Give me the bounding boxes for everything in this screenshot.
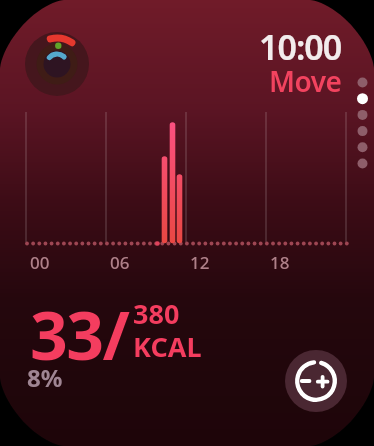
staticText: 10:00 <box>259 24 342 64</box>
staticText: 380 <box>133 295 180 332</box>
staticText: KCAL <box>133 328 202 365</box>
staticText: Move <box>269 62 342 96</box>
staticText: 33/ <box>30 289 129 379</box>
button[interactable] <box>285 350 347 412</box>
button[interactable] <box>25 32 89 96</box>
staticText: 06 <box>110 251 130 274</box>
staticText: 12 <box>190 251 210 274</box>
staticText: 00 <box>30 251 50 274</box>
staticText: 8% <box>27 361 63 394</box>
staticText: 18 <box>270 251 290 274</box>
